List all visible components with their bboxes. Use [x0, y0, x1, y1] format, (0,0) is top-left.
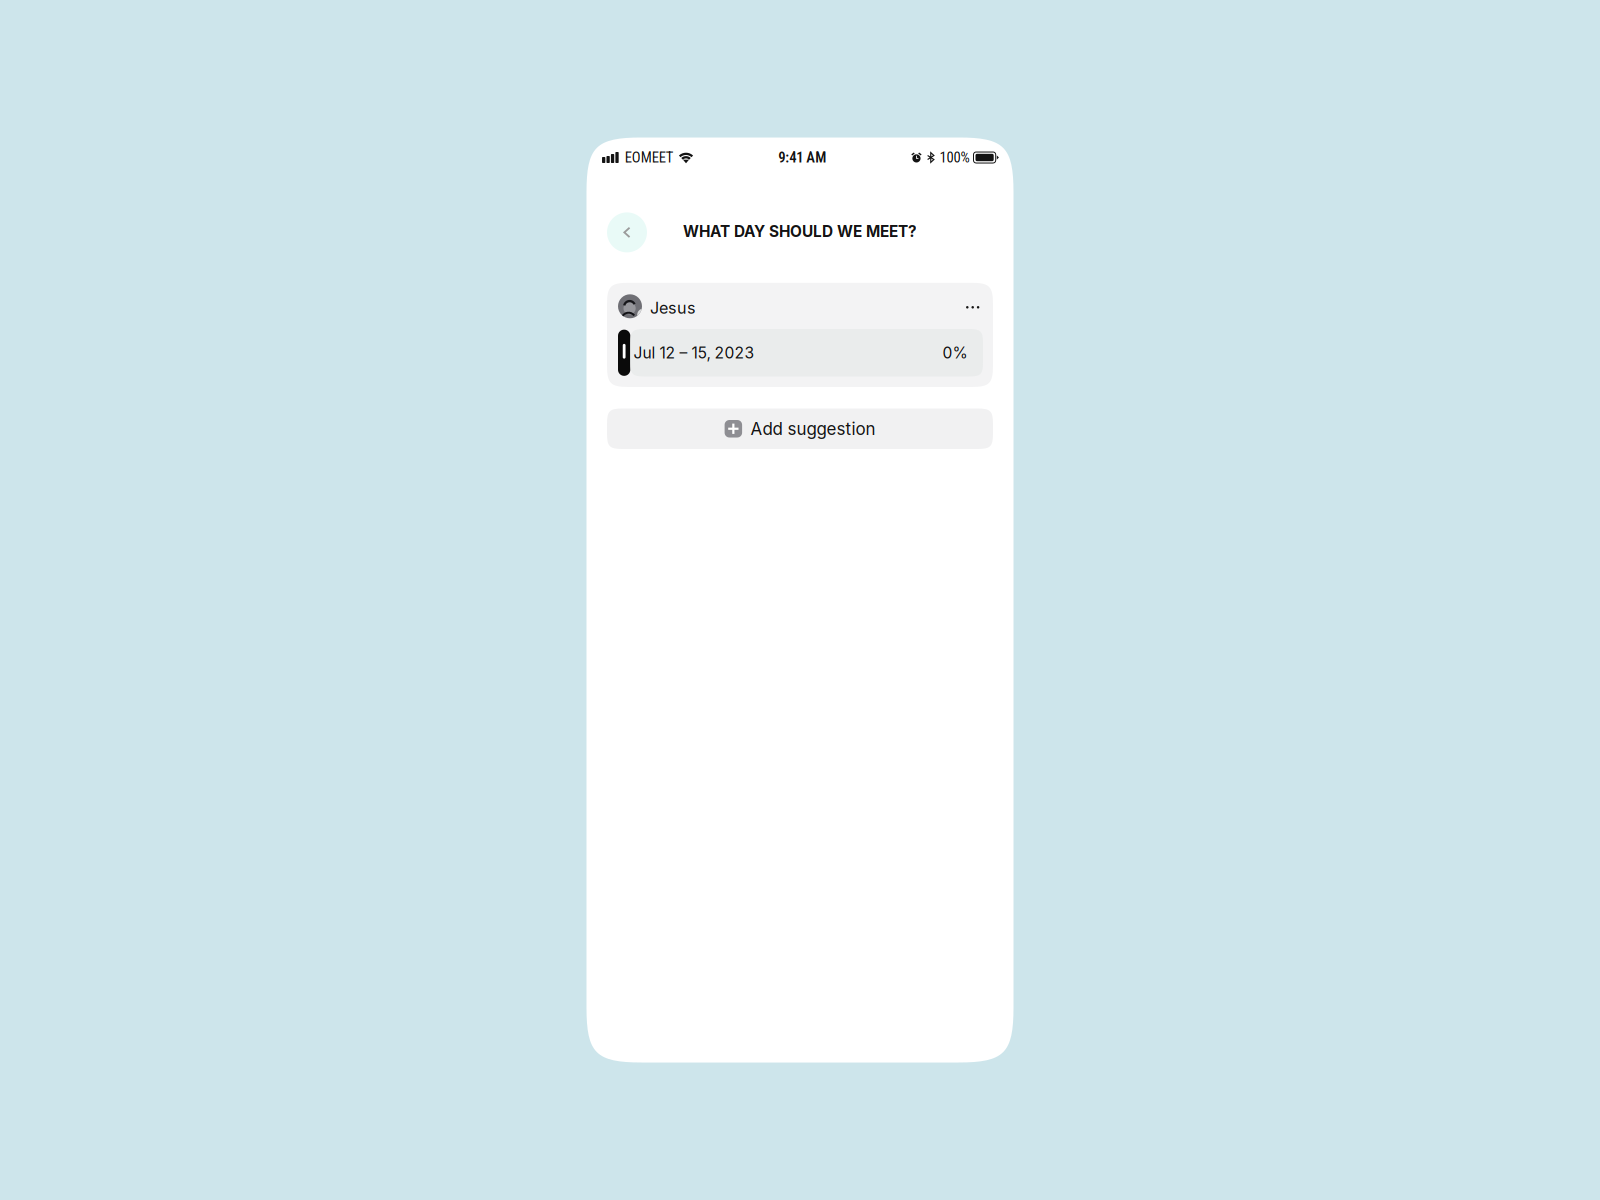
staticText: WHAT DAY SHOULD WE MEET?: [683, 222, 917, 241]
button[interactable]: Add suggestion: [607, 408, 993, 449]
button[interactable]: Back: [607, 212, 647, 252]
staticText: 9:41 AM: [778, 149, 826, 166]
staticText: Add suggestion: [750, 418, 875, 439]
button[interactable]: More options: [959, 294, 987, 318]
staticText: EOMEET: [625, 149, 674, 166]
staticText: 100%: [939, 149, 969, 166]
staticText: Jul 12 – 15, 2023: [634, 343, 755, 362]
staticText: 0%: [942, 343, 967, 362]
button[interactable]: Jul 12 – 15, 2023: [618, 329, 983, 376]
staticText: Jesus: [650, 298, 696, 317]
